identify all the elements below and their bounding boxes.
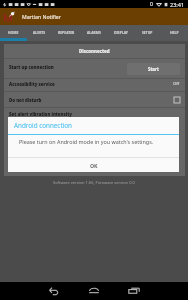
staticText: Please turn on Android mode in you watch…: [19, 138, 154, 145]
staticText: Start up connection: [9, 64, 54, 70]
button[interactable]: Accessibility service: [4, 79, 185, 91]
button[interactable]: Start: [127, 63, 180, 75]
button[interactable]: ALARMS: [80, 25, 107, 41]
staticText: OK: [90, 162, 98, 169]
staticText: ALARMS: [87, 30, 101, 35]
staticText: Disconnected: [79, 48, 110, 54]
staticText: Android connection: [14, 121, 72, 130]
button[interactable]: Set alert vibration intensity: [4, 108, 185, 120]
staticText: Off: [173, 81, 180, 87]
button[interactable]: Home: [84, 284, 104, 298]
staticText: 23:41: [170, 1, 185, 8]
button[interactable]: Back: [44, 284, 64, 298]
staticText: Martian Notifier: [22, 13, 61, 20]
staticText: REPEATER: [58, 30, 75, 35]
staticText: HELP: [170, 30, 179, 35]
staticText: Do not disturb: [9, 97, 42, 103]
button[interactable]: App icon: [2, 9, 18, 25]
staticText: ALERTS: [33, 30, 46, 35]
staticText: DISPLAY: [114, 30, 128, 35]
staticText: Accessibility service: [9, 81, 55, 87]
staticText: SETUP: [142, 30, 153, 35]
button[interactable]: HELP: [161, 25, 188, 41]
staticText: Set alert vibration intensity: [9, 111, 72, 117]
staticText: Start: [148, 66, 159, 72]
button[interactable]: ALERTS: [26, 25, 53, 41]
button[interactable]: HOME: [0, 25, 26, 41]
button[interactable]: REPEATER: [53, 25, 80, 41]
button[interactable]: Do not disturb: [4, 92, 185, 107]
button[interactable]: Start up connection: [4, 59, 185, 78]
button[interactable]: OK: [8, 158, 179, 172]
staticText: Software version 1.66, Firmware version …: [53, 180, 135, 185]
staticText: HOME: [8, 30, 19, 35]
staticText: 0: [150, 1, 153, 8]
button[interactable]: Recent apps: [124, 284, 144, 298]
button[interactable]: SETUP: [134, 25, 161, 41]
button[interactable]: DISPLAY: [107, 25, 134, 41]
